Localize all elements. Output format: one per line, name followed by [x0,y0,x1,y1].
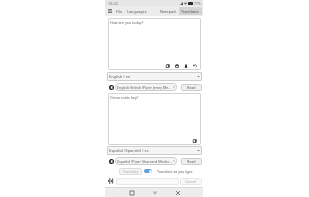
staticText: Read [187,159,196,164]
staticText: English British (Piper Jenny Medi.. [117,85,172,90]
button[interactable]: Languages [126,7,148,16]
button[interactable]: Play voice [107,157,115,165]
button[interactable]: Close [173,188,182,197]
button[interactable]: Cancel [180,178,202,185]
button[interactable]: Copy [192,138,197,143]
staticText: Cómo estás hoy? [110,95,139,100]
staticText: How are you today? [110,20,144,25]
staticText: Translate [123,169,139,174]
staticText: File [116,9,123,14]
button[interactable]: Audio [106,176,116,186]
button[interactable]: Copy [165,63,170,68]
button[interactable]: Notepad [158,7,178,16]
button[interactable] [144,169,152,173]
button[interactable]: Español (Piper Sharvard Medium [115,157,177,165]
button[interactable]: Menu [107,8,113,14]
button[interactable]: Español (Spanish) / es [107,146,202,155]
button[interactable]: Undo [192,63,197,68]
button[interactable]: Read [181,84,202,91]
staticText: Translator [181,9,200,14]
button[interactable]: File [115,7,124,16]
staticText: 77% [194,1,201,6]
staticText: English / en [109,74,131,79]
staticText: Languages [127,9,147,14]
button[interactable]: Read [181,158,202,165]
button[interactable]: Paste [174,63,179,68]
button[interactable]: Translator [179,7,202,15]
staticText: Español (Spanish) / es [109,148,149,153]
staticText: Notepad [160,9,176,14]
button[interactable]: English / en [107,72,202,81]
button[interactable]: Recents [127,188,136,197]
button[interactable]: Clear [183,63,188,68]
button[interactable]: Hide keyboard [150,188,159,197]
button[interactable]: Play voice [107,83,115,91]
button[interactable]: English British (Piper Jenny Medi.. [115,83,177,91]
staticText: Translate as you type [157,169,193,174]
staticText: Español (Piper Sharvard Medium [117,159,172,164]
staticText: 16:32 [108,1,118,6]
staticText: Read [187,85,196,90]
button[interactable]: Translate [119,168,142,175]
staticText: Cancel [185,179,197,184]
